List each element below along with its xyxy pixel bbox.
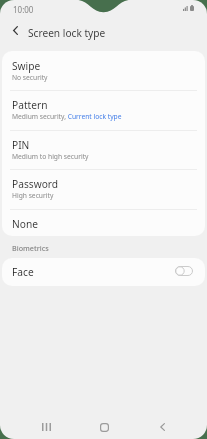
staticText: Medium security, Current lock type (12, 112, 122, 121)
staticText: Face (12, 265, 34, 279)
staticText: Medium to high security (12, 152, 89, 161)
staticText: Password (12, 177, 59, 191)
staticText: None (12, 217, 38, 231)
button[interactable]: PIN (2, 130, 205, 169)
staticText: Swipe (12, 59, 41, 73)
button[interactable]: None (2, 209, 205, 236)
button[interactable]: Face (2, 258, 205, 286)
button[interactable]: Navigate up (4, 19, 27, 41)
button[interactable]: Swipe (2, 51, 205, 90)
button[interactable]: Back (143, 415, 182, 439)
button[interactable]: Pattern (2, 90, 205, 130)
button[interactable]: Home (85, 415, 124, 439)
staticText: Screen lock type (28, 26, 106, 40)
button[interactable]: Recent apps (27, 415, 66, 439)
staticText: Biometrics (12, 243, 49, 253)
staticText: No security (12, 73, 48, 82)
staticText: 10:00 (13, 4, 34, 15)
staticText: PIN (12, 138, 30, 152)
staticText: Pattern (12, 98, 48, 112)
button[interactable]: Password (2, 169, 205, 209)
staticText: High security (12, 191, 54, 200)
